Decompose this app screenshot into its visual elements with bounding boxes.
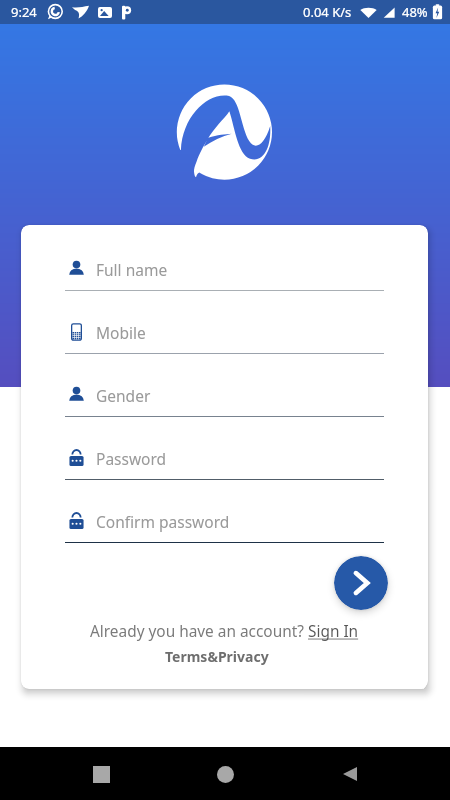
staticText: 9:24 xyxy=(11,3,37,21)
button[interactable]: Continue xyxy=(334,556,388,610)
staticText: Sign In xyxy=(308,621,359,642)
staticText: Full name xyxy=(96,259,168,280)
button[interactable]: Password xyxy=(65,437,384,500)
button[interactable]: Back xyxy=(326,750,374,798)
button[interactable]: Terms&Privacy xyxy=(165,647,269,666)
button[interactable]: Home xyxy=(201,750,249,798)
button[interactable]: Sign In xyxy=(308,621,359,642)
staticText: Gender xyxy=(96,385,151,406)
button[interactable]: Full name xyxy=(65,248,384,311)
staticText: Mobile xyxy=(96,322,146,343)
button[interactable]: Confirm password xyxy=(65,500,384,563)
staticText: Already you have an account? xyxy=(90,621,308,642)
button[interactable]: Recents xyxy=(77,750,125,798)
staticText: 0.04 K/s xyxy=(303,3,352,21)
button[interactable]: Mobile xyxy=(65,311,384,374)
staticText: Confirm password xyxy=(96,511,230,532)
staticText: 48% xyxy=(402,3,428,21)
staticText: Password xyxy=(96,448,167,469)
staticText: Terms&Privacy xyxy=(165,647,269,666)
button[interactable]: Gender xyxy=(65,374,384,437)
